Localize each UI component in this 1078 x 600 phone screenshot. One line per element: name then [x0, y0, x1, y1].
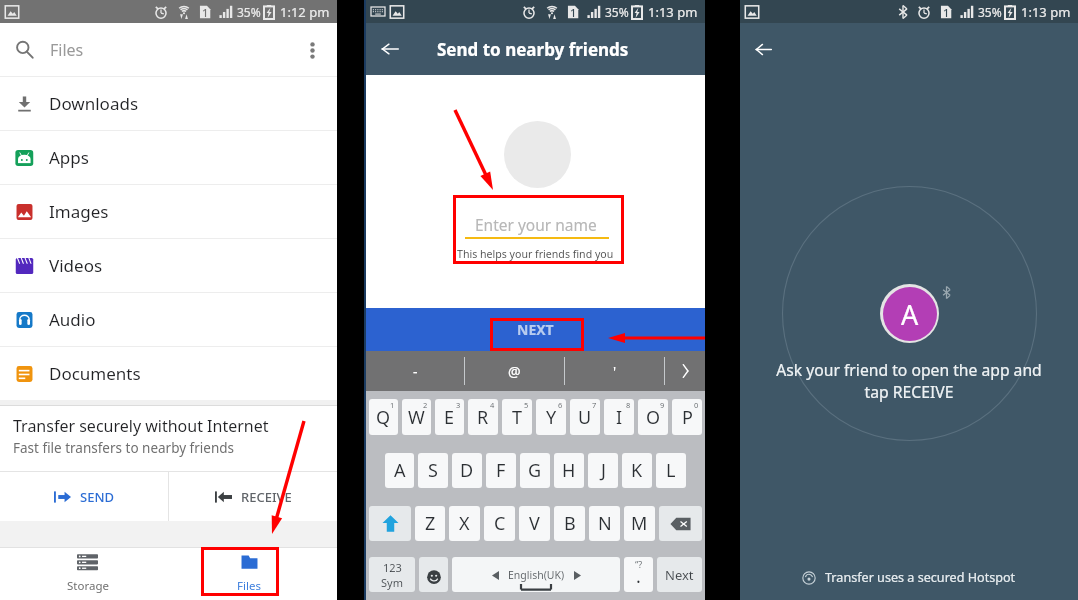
button[interactable]: Y: [536, 399, 566, 435]
staticText: SEND: [80, 488, 114, 506]
button[interactable]: Files: [168, 548, 330, 600]
staticText: X: [459, 511, 470, 536]
staticText: NEXT: [517, 320, 554, 339]
staticText: ': [613, 362, 617, 381]
button[interactable]: NEXT: [366, 308, 705, 351]
staticText: Videos: [49, 254, 103, 277]
button[interactable]: X: [449, 506, 480, 541]
staticText: 2: [423, 400, 428, 410]
staticText: A: [901, 296, 919, 333]
staticText: -: [413, 362, 418, 381]
staticText: 8: [626, 400, 631, 410]
staticText: U: [578, 405, 592, 430]
button[interactable]: C: [484, 506, 515, 541]
button[interactable]: U: [570, 399, 600, 435]
staticText: S: [428, 458, 438, 483]
staticText: Q: [376, 405, 391, 430]
button[interactable]: Next: [657, 557, 702, 592]
button[interactable]: W: [402, 399, 431, 435]
button[interactable]: D: [452, 453, 482, 488]
staticText: 6: [558, 400, 563, 410]
staticText: 35%: [978, 4, 1002, 20]
button[interactable]: I: [604, 399, 634, 435]
button[interactable]: English(UK): [452, 557, 620, 592]
button[interactable]: E: [435, 399, 464, 435]
button[interactable]: O: [638, 399, 668, 435]
staticText: Send to nearby friends: [437, 38, 629, 61]
staticText: 1:12 pm: [280, 3, 330, 21]
button[interactable]: SEND: [0, 472, 168, 521]
staticText: 0: [694, 400, 699, 410]
staticText: T: [512, 405, 523, 430]
button[interactable]: Downloads: [0, 77, 337, 130]
button[interactable]: R: [468, 399, 498, 435]
button[interactable]: P: [672, 399, 702, 435]
button[interactable]: Apps: [0, 131, 337, 184]
button[interactable]: More suggestions: [665, 351, 705, 391]
staticText: Transfer uses a secured Hotspot: [825, 569, 1016, 586]
staticText: @: [508, 362, 521, 381]
staticText: H: [562, 458, 576, 483]
button[interactable]: H: [554, 453, 584, 488]
button[interactable]: 123: [369, 557, 415, 592]
staticText: .: [636, 564, 641, 589]
staticText: Audio: [49, 308, 96, 331]
button[interactable]: N: [589, 506, 620, 541]
staticText: RECEIVE: [241, 488, 292, 506]
button[interactable]: Files: [0, 23, 337, 76]
staticText: D: [460, 458, 474, 483]
button[interactable]: K: [622, 453, 652, 488]
button[interactable]: Images: [0, 185, 337, 238]
staticText: 1: [202, 5, 209, 19]
staticText: W: [408, 405, 425, 430]
staticText: V: [529, 511, 540, 536]
staticText: Enter your name: [475, 214, 597, 235]
button[interactable]: @: [465, 351, 564, 391]
staticText: E: [444, 405, 455, 430]
staticText: 5: [524, 400, 529, 410]
button[interactable]: L: [656, 453, 686, 488]
button[interactable]: Backspace: [659, 506, 702, 541]
staticText: Z: [425, 511, 436, 536]
staticText: 35%: [605, 4, 629, 20]
button[interactable]: V: [519, 506, 550, 541]
button[interactable]: Z: [415, 506, 445, 541]
button[interactable]: G: [520, 453, 550, 488]
staticText: 1:13 pm: [1021, 3, 1071, 21]
button[interactable]: Q: [369, 399, 398, 435]
button[interactable]: T: [502, 399, 532, 435]
button[interactable]: B: [554, 506, 585, 541]
button[interactable]: ': [565, 351, 664, 391]
button[interactable]: RECEIVE: [169, 472, 337, 521]
button[interactable]: Documents: [0, 347, 337, 400]
button[interactable]: Audio: [0, 293, 337, 346]
button[interactable]: A: [385, 453, 414, 488]
staticText: English(UK): [508, 568, 565, 582]
button[interactable]: Storage: [7, 548, 168, 600]
staticText: L: [666, 458, 676, 483]
button[interactable]: Emoji: [419, 557, 448, 592]
staticText: “?: [635, 558, 643, 570]
button[interactable]: Shift: [369, 506, 411, 541]
button[interactable]: S: [418, 453, 448, 488]
button[interactable]: Back: [740, 23, 786, 76]
staticText: C: [494, 511, 506, 536]
button[interactable]: “?: [624, 557, 653, 592]
staticText: Sym: [381, 575, 403, 590]
staticText: O: [646, 405, 661, 430]
button[interactable]: J: [588, 453, 618, 488]
staticText: Images: [49, 200, 109, 223]
staticText: 9: [660, 400, 665, 410]
button[interactable]: F: [486, 453, 516, 488]
staticText: G: [528, 458, 542, 483]
staticText: B: [564, 511, 576, 536]
button[interactable]: Back: [366, 23, 413, 75]
button[interactable]: Videos: [0, 239, 337, 292]
staticText: Storage: [67, 578, 109, 594]
button[interactable]: More options: [297, 35, 327, 65]
button[interactable]: M: [624, 506, 655, 541]
staticText: Files: [50, 39, 84, 61]
staticText: Documents: [49, 362, 141, 385]
button[interactable]: -: [366, 351, 464, 391]
staticText: Transfer securely without Internet: [13, 415, 269, 437]
